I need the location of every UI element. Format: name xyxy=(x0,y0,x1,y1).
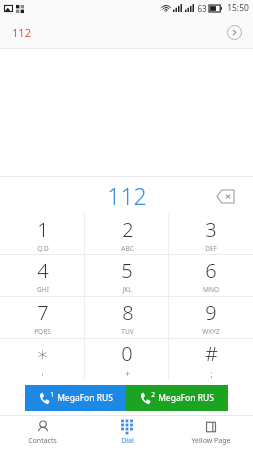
staticText: WXYZ xyxy=(202,327,220,336)
staticText: 1 xyxy=(37,216,49,243)
staticText: JKL xyxy=(122,285,132,294)
staticText: 15:50 xyxy=(227,2,249,14)
staticText: DEF xyxy=(205,244,217,253)
staticText: + xyxy=(125,368,130,379)
staticText: ; xyxy=(210,368,213,379)
button[interactable]: # xyxy=(169,339,253,380)
button[interactable]: 0 xyxy=(85,339,169,380)
button[interactable]: 2 xyxy=(126,385,228,411)
button[interactable]: 3 xyxy=(169,214,253,254)
button[interactable]: 8 xyxy=(85,297,169,338)
button[interactable]: Expand xyxy=(225,23,243,41)
staticText: Contacts xyxy=(28,436,57,446)
button[interactable]: 5 xyxy=(85,255,169,296)
staticText: MegaFon RUS xyxy=(57,392,113,404)
button[interactable]: Yellow Page xyxy=(169,416,253,450)
staticText: MegaFon RUS xyxy=(158,392,214,404)
staticText: 5 xyxy=(121,257,133,284)
button[interactable]: Dial xyxy=(85,416,169,450)
staticText: 8 xyxy=(122,299,134,326)
staticText: 2 xyxy=(151,390,155,399)
staticText: ∗ xyxy=(36,342,49,365)
staticText: , xyxy=(41,366,44,377)
staticText: 112 xyxy=(107,180,147,211)
staticText: 4 xyxy=(37,257,49,284)
button[interactable]: 9 xyxy=(169,297,253,338)
staticText: Yellow Page xyxy=(191,436,231,446)
staticText: 6 xyxy=(205,257,217,284)
staticText: # xyxy=(205,340,218,367)
staticText: 1 xyxy=(50,390,54,399)
staticText: 9 xyxy=(205,299,217,326)
button[interactable]: 1 xyxy=(0,214,85,254)
button[interactable]: Contacts xyxy=(0,416,85,450)
button[interactable]: 6 xyxy=(169,255,253,296)
staticText: 63 xyxy=(197,3,207,14)
staticText: TUV xyxy=(121,327,134,336)
button[interactable]: 7 xyxy=(0,297,85,338)
button[interactable]: 2 xyxy=(85,214,169,254)
staticText: Dial xyxy=(121,436,134,446)
button[interactable]: Backspace xyxy=(213,183,239,209)
staticText: Q.D xyxy=(37,244,49,253)
staticText: PQRS xyxy=(34,327,51,336)
button[interactable]: 1 xyxy=(25,385,126,411)
button[interactable]: ∗ xyxy=(0,339,85,380)
staticText: GHI xyxy=(37,285,49,294)
staticText: 2 xyxy=(122,216,134,243)
staticText: 0 xyxy=(121,340,133,367)
staticText: 7 xyxy=(37,299,49,326)
staticText: ABC xyxy=(121,244,134,253)
staticText: MNO xyxy=(203,285,219,294)
staticText: 3 xyxy=(205,216,217,243)
button[interactable]: 4 xyxy=(0,255,85,296)
staticText: 112 xyxy=(12,25,31,40)
button[interactable]: 112 xyxy=(0,16,253,48)
